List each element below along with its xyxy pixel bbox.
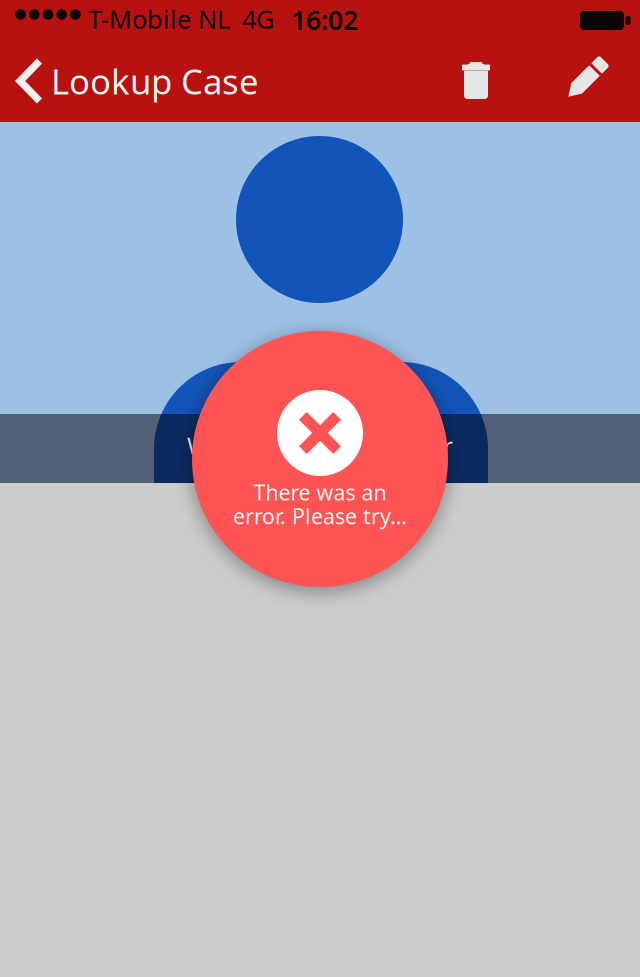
button[interactable]: Edit	[548, 40, 620, 122]
staticText: T-Mobile NL	[88, 2, 230, 36]
staticText: 16:02	[291, 2, 358, 37]
staticText: There was an	[253, 478, 386, 506]
button[interactable]: Delete	[440, 40, 512, 122]
staticText: Lookup Case	[51, 58, 259, 104]
staticText: 4G	[242, 2, 274, 36]
staticText: error. Please try…	[233, 502, 407, 530]
staticText: Wanted: Stolen Scooter	[187, 430, 453, 461]
button[interactable]: Lookup Case	[0, 40, 290, 122]
